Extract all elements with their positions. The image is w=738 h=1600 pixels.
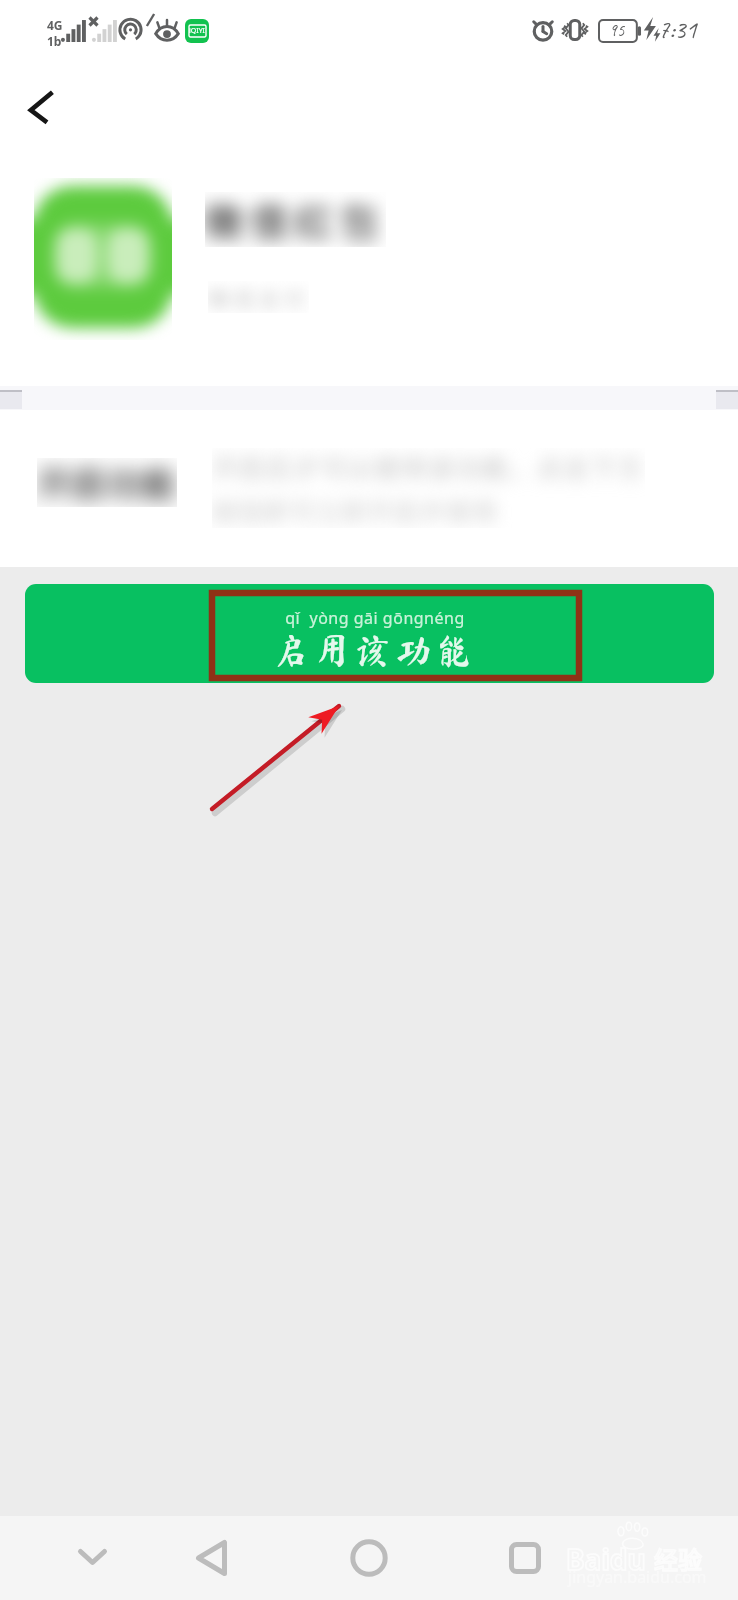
staticText: 95 <box>609 20 625 41</box>
staticText: 启用该功能 <box>272 632 478 668</box>
button[interactable]: qǐ yòng gāi gōngnéng <box>25 584 714 683</box>
staticText: qǐ yòng gāi gōngnéng <box>285 607 465 629</box>
button[interactable]: Back <box>171 1516 251 1600</box>
staticText: 开启功能 <box>37 458 177 507</box>
button[interactable]: Back <box>10 76 72 138</box>
staticText: 1b <box>47 33 62 49</box>
button[interactable]: Home <box>329 1516 409 1600</box>
staticText: 微信红包 <box>205 192 386 247</box>
staticText: 开启后才可以使用该功能，点击下方 <box>212 448 645 486</box>
staticText: iQIYI <box>189 26 205 36</box>
button[interactable]: Hide keyboard <box>52 1516 132 1600</box>
staticText: 7:31 <box>658 14 697 46</box>
staticText: 经验 <box>654 1541 702 1576</box>
button[interactable]: Recents <box>485 1516 565 1600</box>
staticText: 4G <box>47 17 63 33</box>
staticText: 微信支付 <box>208 281 309 313</box>
staticText: 按钮即可立即开启并使用 <box>212 492 499 528</box>
